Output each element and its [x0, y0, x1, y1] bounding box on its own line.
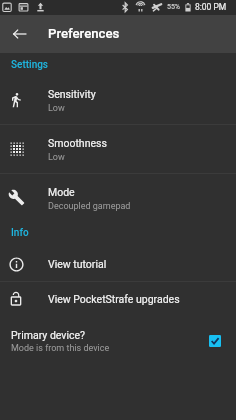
- staticText: Primary device?: [11, 329, 85, 341]
- staticText: 55%: [167, 3, 180, 11]
- staticText: Sensitivity: [48, 88, 96, 100]
- button[interactable]: Navigate up: [0, 15, 38, 53]
- staticText: Low: [48, 152, 65, 163]
- staticText: View tutorial: [48, 258, 107, 270]
- button[interactable]: View PocketStrafe upgrades: [0, 281, 236, 317]
- button[interactable]: Primary device?: [0, 317, 236, 359]
- staticText: Settings: [11, 59, 49, 71]
- staticText: Smoothness: [48, 137, 107, 149]
- staticText: View PocketStrafe upgrades: [48, 293, 180, 305]
- staticText: Mode: [48, 186, 75, 198]
- button[interactable]: Sensitivity: [0, 75, 236, 124]
- staticText: Mode is from this device: [11, 343, 110, 354]
- button[interactable]: Smoothness: [0, 124, 236, 173]
- staticText: Info: [11, 227, 29, 239]
- staticText: Low: [48, 103, 65, 114]
- button[interactable]: Mode: [0, 173, 236, 222]
- staticText: 8:00 PM: [195, 2, 227, 12]
- staticText: Preferences: [48, 26, 120, 41]
- staticText: Decoupled gamepad: [48, 201, 131, 212]
- button[interactable]: View tutorial: [0, 246, 236, 282]
